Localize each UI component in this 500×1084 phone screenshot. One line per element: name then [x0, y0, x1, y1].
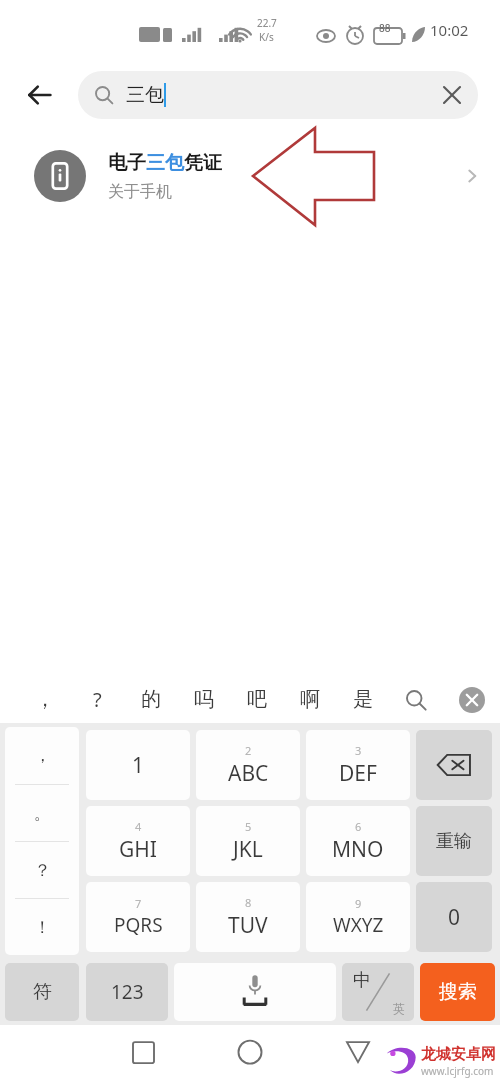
button[interactable]: 吧 [230, 676, 283, 723]
staticText: 88 [379, 21, 391, 35]
button[interactable]: Space and voice input [174, 963, 336, 1021]
staticText: 吗 [194, 687, 214, 712]
staticText: 22.7 [257, 16, 277, 30]
button[interactable]: 7 [86, 882, 190, 952]
staticText: 电子三包凭证 [108, 151, 222, 175]
button[interactable]: 9 [306, 882, 410, 952]
button[interactable]: 搜索 [420, 963, 495, 1021]
staticText: WXYZ [333, 912, 384, 938]
staticText: 8 [245, 895, 252, 910]
staticText: 123 [111, 979, 144, 1005]
staticText: DEF [339, 759, 377, 788]
button[interactable]: ？ [5, 842, 79, 898]
staticText: 是 [353, 687, 373, 712]
staticText: 4 [135, 819, 142, 834]
staticText: ? [93, 686, 102, 713]
button[interactable]: 123 [86, 963, 168, 1021]
button[interactable]: ， [5, 727, 79, 784]
button[interactable]: 啊 [283, 676, 336, 723]
button[interactable]: ！ [5, 899, 79, 955]
staticText: 关于手机 [108, 182, 172, 202]
button[interactable]: Close keyboard [450, 676, 494, 723]
staticText: 的 [141, 687, 161, 712]
staticText: 2 [245, 743, 252, 758]
button[interactable]: 8 [196, 882, 300, 952]
button[interactable]: 三包 [78, 71, 478, 119]
staticText: ！ [34, 917, 51, 938]
staticText: 符 [33, 980, 52, 1004]
button[interactable]: 符 [5, 963, 79, 1021]
button[interactable]: Back [0, 58, 78, 132]
staticText: ？ [34, 860, 51, 881]
button[interactable]: 4 [86, 806, 190, 876]
button[interactable]: 0 [416, 882, 492, 952]
staticText: 三包 [126, 83, 164, 107]
staticText: TUV [228, 911, 268, 940]
staticText: www.lcjrfg.com [421, 1064, 494, 1078]
button[interactable]: Clear [430, 73, 474, 117]
staticText: MNO [332, 835, 384, 864]
button[interactable]: Backspace [416, 730, 492, 800]
button[interactable]: 2 [196, 730, 300, 800]
staticText: ， [35, 687, 55, 712]
button[interactable]: 。 [5, 785, 79, 841]
button[interactable]: 重输 [416, 806, 492, 876]
staticText: 。 [34, 803, 51, 824]
button[interactable]: 3 [306, 730, 410, 800]
staticText: 9 [355, 896, 362, 911]
staticText: 7 [135, 896, 142, 911]
button[interactable]: 中 [342, 963, 414, 1021]
staticText: 啊 [300, 687, 320, 712]
staticText: GHI [119, 835, 157, 864]
staticText: 龙城安卓网 [421, 1045, 496, 1064]
staticText: 0 [448, 903, 461, 932]
staticText: 重输 [436, 830, 472, 853]
staticText: ， [34, 745, 51, 766]
staticText: 1 [132, 751, 145, 780]
button[interactable]: 的 [124, 676, 177, 723]
button[interactable]: 电子三包凭证 [0, 132, 500, 220]
button[interactable]: 是 [336, 676, 389, 723]
staticText: 搜索 [439, 980, 477, 1004]
staticText: JKL [233, 835, 263, 864]
button[interactable]: 1 [86, 730, 190, 800]
button[interactable]: 吗 [177, 676, 230, 723]
staticText: 吧 [247, 687, 267, 712]
staticText: 6 [355, 819, 362, 834]
staticText: 中 [353, 969, 371, 992]
button[interactable]: 5 [196, 806, 300, 876]
button[interactable]: ? [71, 676, 124, 723]
staticText: 10:02 [430, 20, 469, 40]
staticText: K/s [259, 30, 274, 44]
button[interactable]: Search suggestions [396, 676, 436, 723]
staticText: ABC [228, 759, 269, 788]
staticText: 英 [393, 1001, 405, 1016]
staticText: PQRS [114, 912, 163, 938]
button[interactable]: ， [18, 676, 71, 723]
staticText: 3 [355, 743, 362, 758]
staticText: 5 [245, 819, 252, 834]
button[interactable]: 6 [306, 806, 410, 876]
